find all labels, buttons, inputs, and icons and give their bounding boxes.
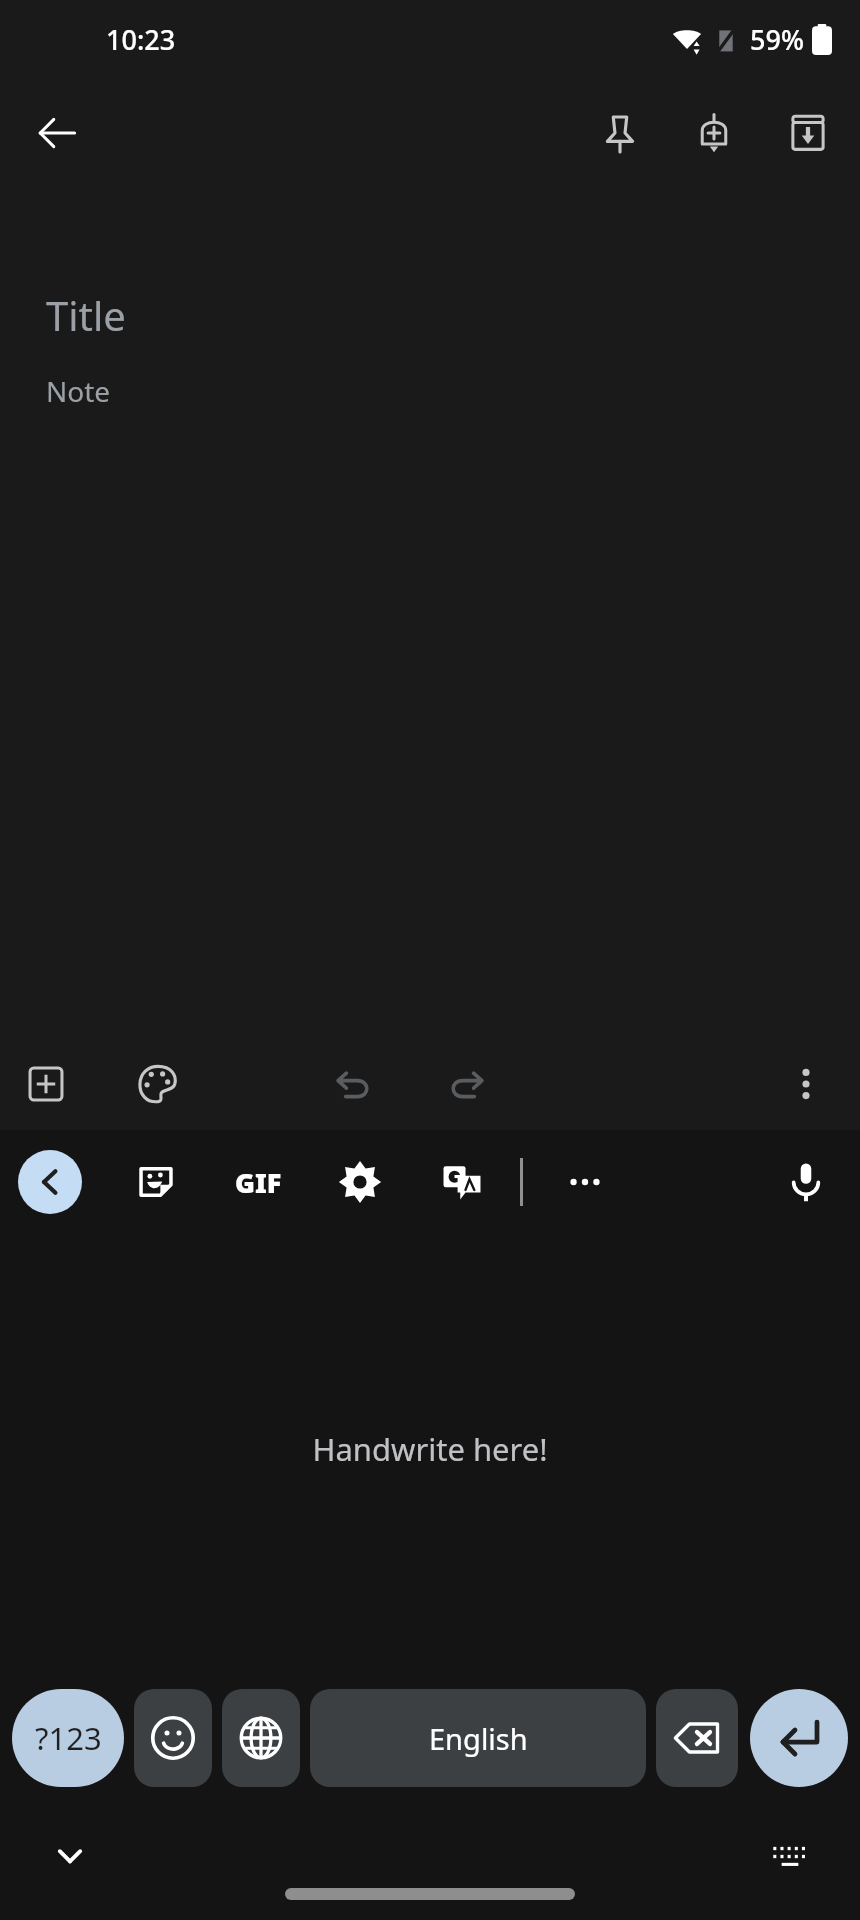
button[interactable]: Delete [656,1689,738,1787]
button[interactable]: English [310,1689,646,1787]
button[interactable]: Archive [774,99,842,167]
button[interactable]: Change language [222,1689,300,1787]
button[interactable]: Redo [434,1052,498,1116]
button[interactable]: ?123 [12,1689,124,1787]
button[interactable]: Emoji [134,1689,212,1787]
button[interactable]: Keyboard settings [328,1150,392,1214]
button[interactable]: GIF [226,1150,290,1214]
button[interactable]: Stickers [124,1150,188,1214]
staticText: ?123 [35,1717,102,1759]
button[interactable]: Pin note [586,99,654,167]
staticText: 10:23 [106,21,176,58]
button[interactable]: Voice input [774,1150,838,1214]
staticText: 59% [750,21,804,58]
button[interactable]: Enter [750,1689,848,1787]
button[interactable]: Switch keyboard [762,1828,818,1884]
staticText: GIF [235,1164,282,1201]
button[interactable]: Hide keyboard [42,1828,98,1884]
button[interactable]: More options [774,1052,838,1116]
staticText: Title [46,288,126,342]
button[interactable]: Change color [126,1052,190,1116]
button[interactable]: More [553,1150,617,1214]
button[interactable]: Remind me [680,99,748,167]
button[interactable]: Add attachment [14,1052,78,1116]
button[interactable]: Back [22,98,92,168]
button[interactable]: Expand toolbar [18,1150,82,1214]
staticText: Handwrite here! [312,1428,548,1470]
staticText: Note [46,372,111,410]
button[interactable]: Translate [430,1150,494,1214]
button[interactable]: Undo [322,1052,386,1116]
staticText: English [429,1719,528,1758]
